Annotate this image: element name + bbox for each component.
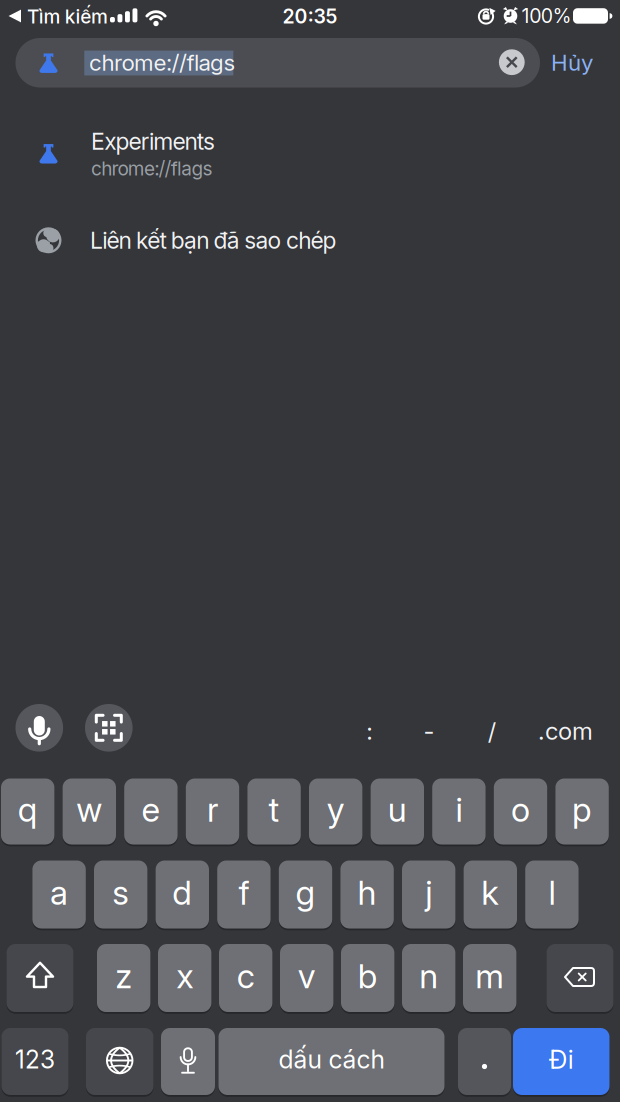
staticText: Tìm kiếm xyxy=(27,5,108,28)
button[interactable]: Quét mã QR xyxy=(85,704,133,752)
button[interactable]: b xyxy=(346,943,399,1013)
button[interactable]: . xyxy=(458,1027,511,1096)
staticText: y xyxy=(327,790,345,829)
button[interactable]: e xyxy=(129,777,183,845)
button[interactable]: w xyxy=(68,777,121,845)
button[interactable]: p xyxy=(560,777,614,845)
button[interactable]: g xyxy=(284,859,337,929)
staticText: r xyxy=(207,790,218,829)
button[interactable]: Liên kết bạn đã sao chép xyxy=(0,209,620,271)
staticText: Hủy xyxy=(551,49,593,76)
button[interactable]: l xyxy=(530,859,584,929)
button[interactable]: .com xyxy=(530,709,600,753)
staticText: m xyxy=(475,956,504,996)
staticText: p xyxy=(572,790,592,829)
staticText: a xyxy=(50,873,68,912)
staticText: u xyxy=(388,790,407,829)
button[interactable]: y xyxy=(314,777,367,845)
staticText: e xyxy=(141,790,160,829)
button[interactable]: dấu cách xyxy=(223,1027,449,1096)
button[interactable]: t xyxy=(252,777,306,845)
staticText: g xyxy=(295,873,315,912)
button[interactable]: i xyxy=(437,777,491,845)
button[interactable]: f xyxy=(222,859,276,929)
staticText: dấu cách xyxy=(278,1045,384,1074)
button[interactable]: : xyxy=(350,709,390,753)
staticText: d xyxy=(172,873,192,912)
staticText: q xyxy=(18,790,38,829)
button[interactable]: Xóa xyxy=(546,943,613,1013)
staticText: 100% xyxy=(521,4,571,27)
staticText: v xyxy=(298,956,316,996)
staticText: f xyxy=(238,873,249,912)
staticText: .com xyxy=(538,717,593,745)
button[interactable]: Xóa văn bản xyxy=(494,44,530,80)
button[interactable]: Hủy xyxy=(539,44,605,80)
button[interactable]: a xyxy=(37,859,91,929)
staticText: chrome://flags xyxy=(91,157,213,180)
button[interactable]: d xyxy=(161,859,214,929)
button[interactable]: u xyxy=(376,777,429,845)
staticText: 123 xyxy=(15,1045,55,1074)
button[interactable]: / xyxy=(472,709,512,753)
button[interactable]: x xyxy=(163,943,216,1013)
button[interactable]: v xyxy=(285,943,338,1013)
staticText: k xyxy=(481,873,499,912)
staticText: n xyxy=(419,956,438,996)
button[interactable]: 123 xyxy=(6,1027,73,1096)
button[interactable]: r xyxy=(191,777,244,845)
button[interactable]: Shift xyxy=(6,943,73,1013)
button[interactable]: j xyxy=(407,859,460,929)
staticText: h xyxy=(358,873,377,912)
button[interactable]: Tìm kiếm bằng giọng nói xyxy=(15,704,63,752)
staticText: j xyxy=(425,873,432,912)
staticText: / xyxy=(488,717,496,745)
button[interactable]: - xyxy=(409,709,449,753)
staticText: o xyxy=(511,790,530,829)
staticText: Experiments xyxy=(91,128,215,155)
staticText: Đi xyxy=(549,1044,574,1075)
staticText: t xyxy=(269,790,280,829)
staticText: w xyxy=(76,790,102,829)
button[interactable]: k xyxy=(469,859,522,929)
button[interactable]: n xyxy=(407,943,460,1013)
button[interactable]: Bàn phím tiếp theo xyxy=(86,1027,153,1096)
staticText: - xyxy=(423,717,434,745)
staticText: l xyxy=(548,873,555,912)
button[interactable]: Đọc chính tả xyxy=(161,1027,215,1096)
staticText: s xyxy=(112,873,129,912)
staticText: b xyxy=(358,956,378,996)
staticText: 20:35 xyxy=(282,5,337,28)
button[interactable]: o xyxy=(499,777,552,845)
button[interactable]: Experiments xyxy=(0,110,620,196)
button[interactable]: q xyxy=(6,777,59,845)
staticText: : xyxy=(366,717,373,745)
staticText: c xyxy=(237,956,255,996)
button[interactable]: s xyxy=(99,859,152,929)
button[interactable]: m xyxy=(468,943,521,1013)
staticText: x xyxy=(176,956,193,996)
button[interactable]: Đi xyxy=(518,1027,614,1096)
button[interactable]: z xyxy=(102,943,155,1013)
staticText: z xyxy=(115,956,132,996)
staticText: Liên kết bạn đã sao chép xyxy=(90,227,337,254)
staticText: chrome://flags xyxy=(89,49,235,76)
button[interactable]: h xyxy=(345,859,399,929)
button[interactable]: c xyxy=(224,943,277,1013)
staticText: i xyxy=(455,790,462,829)
